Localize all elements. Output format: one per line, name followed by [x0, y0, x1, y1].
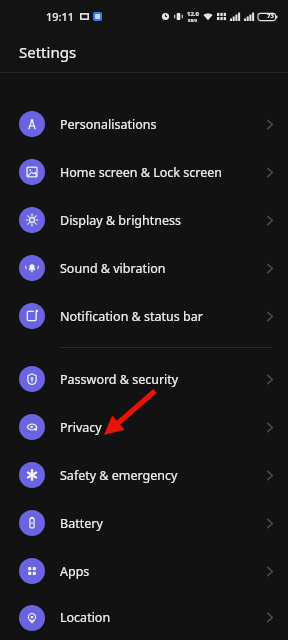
button[interactable]: Sound & vibration [0, 244, 288, 292]
staticText: Home screen & Lock screen [60, 164, 266, 181]
staticText: Apps [60, 563, 266, 580]
staticText: Privacy [60, 419, 266, 436]
button[interactable]: Notification & status bar [0, 292, 288, 340]
button[interactable]: Display & brightness [0, 196, 288, 244]
staticText: Display & brightness [60, 212, 266, 229]
button[interactable]: Safety & emergency [0, 451, 288, 499]
staticText: Safety & emergency [60, 467, 266, 484]
staticText: Sound & vibration [60, 260, 266, 277]
button[interactable]: Personalisations [0, 100, 288, 148]
button[interactable]: Password & security [0, 355, 288, 403]
button[interactable]: Apps [0, 547, 288, 595]
staticText: Notification & status bar [60, 308, 266, 325]
staticText: Password & security [60, 371, 266, 388]
button[interactable]: Privacy [0, 403, 288, 451]
staticText: KB/S [188, 18, 198, 23]
button[interactable]: Home screen & Lock screen [0, 148, 288, 196]
button[interactable]: Battery [0, 499, 288, 547]
staticText: Location [60, 609, 266, 626]
staticText: Battery [60, 515, 266, 532]
staticText: 19:11 [46, 9, 75, 24]
staticText: 12.0 [187, 10, 199, 18]
staticText: Personalisations [60, 116, 266, 133]
button[interactable]: Location [0, 595, 288, 640]
staticText: 73 [267, 12, 274, 20]
staticText: Settings [19, 42, 77, 62]
